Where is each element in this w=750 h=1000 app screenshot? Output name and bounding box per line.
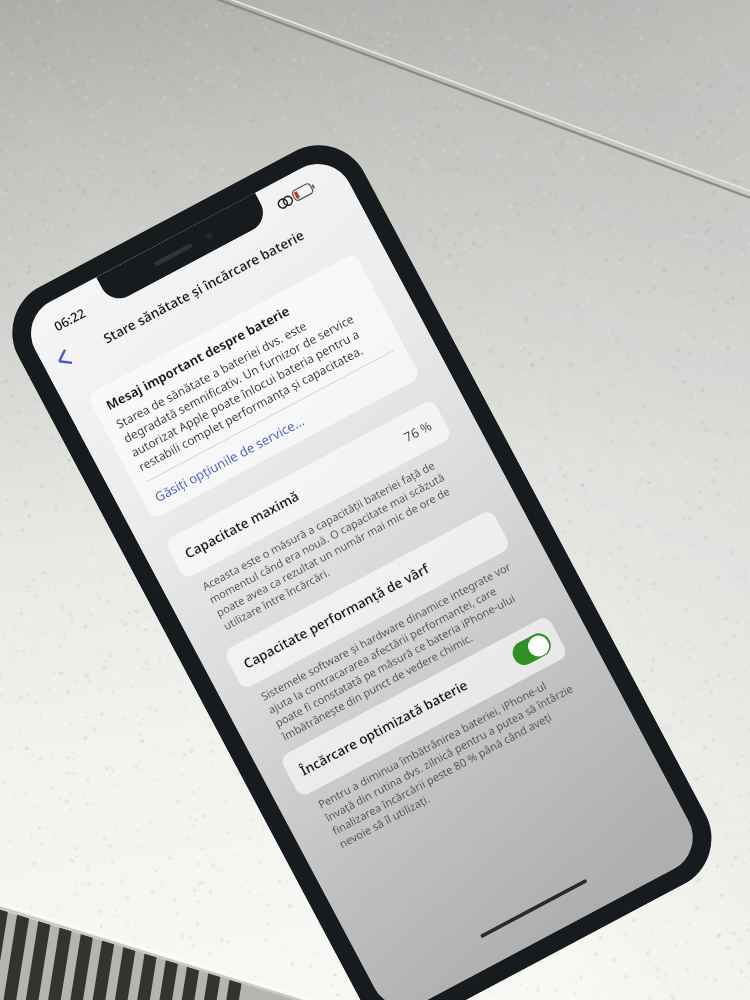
button[interactable]: Optimized battery charging toggle [508, 629, 555, 669]
staticText: Capacitate performanță de vârf [240, 559, 432, 673]
staticText: Aceasta este o măsură a capacității bate… [199, 447, 477, 633]
button[interactable]: Back [42, 340, 82, 380]
staticText: Stare sănătate și încărcare baterie [100, 226, 307, 347]
staticText: Mesaj important despre baterie [103, 301, 293, 414]
button[interactable]: Mesaj important despre baterie [86, 253, 421, 520]
staticText: Încărcare optimizată baterie [297, 675, 471, 780]
staticText: Sistemele software și hardware dinamice … [258, 558, 536, 743]
staticText: Starea de sănătate a bateriei dvs. este … [113, 292, 379, 474]
button[interactable]: Capacitate maximă [164, 398, 453, 580]
button[interactable]: Încărcare optimizată baterie [279, 615, 569, 798]
button[interactable]: Capacitate performanță de vârf [223, 509, 512, 690]
staticText: Găsiți opțiunile de service... [151, 412, 307, 506]
staticText: 06:22 [51, 303, 89, 335]
staticText: 76 % [400, 416, 435, 446]
staticText: Capacitate maximă [181, 487, 302, 562]
staticText: Pentru a diminua îmbătrânirea bateriei, … [315, 665, 593, 851]
